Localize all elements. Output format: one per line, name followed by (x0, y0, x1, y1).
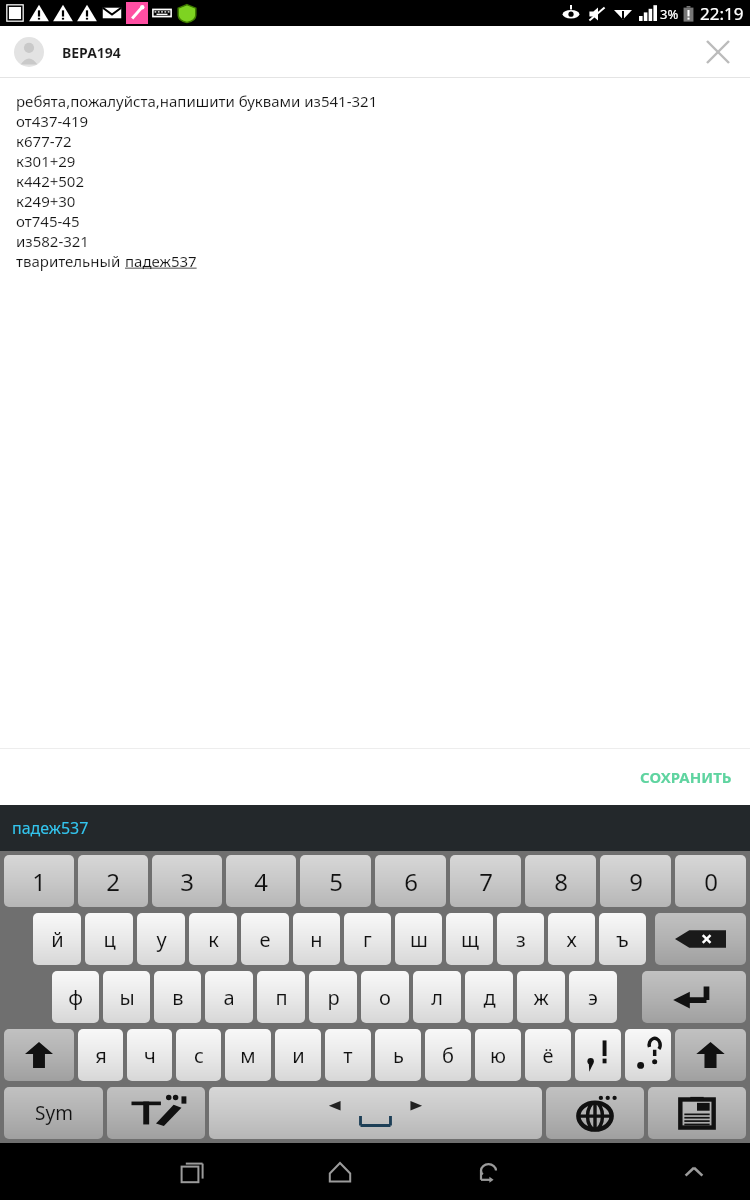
button[interactable]: Backspace (655, 913, 746, 965)
button[interactable]: у (137, 913, 185, 965)
button[interactable]: 7 (450, 855, 521, 907)
staticText: 1 (32, 865, 46, 898)
button[interactable]: Shift (4, 1029, 74, 1081)
staticText: г (363, 926, 372, 953)
staticText: 6 (404, 865, 418, 898)
button[interactable]: й (33, 913, 81, 965)
button[interactable]: 4 (226, 855, 296, 907)
staticText: ч (144, 1042, 156, 1069)
staticText: м (240, 1042, 256, 1069)
staticText: к249+30 (16, 191, 76, 211)
button[interactable]: 2 (78, 855, 148, 907)
button[interactable]: Space (209, 1087, 542, 1139)
button[interactable]: Shift (675, 1029, 746, 1081)
staticText: Sym (35, 1100, 73, 1126)
staticText: к (208, 926, 219, 953)
button[interactable]: ц (85, 913, 133, 965)
staticText: 8 (554, 865, 568, 898)
button[interactable]: Handwriting (107, 1087, 205, 1139)
staticText: тварительный (16, 251, 125, 271)
staticText: от437-419 (16, 111, 89, 131)
button[interactable]: СОХРАНИТЬ (630, 757, 742, 797)
button[interactable]: к (189, 913, 237, 965)
button[interactable]: Clipboard (648, 1087, 746, 1139)
staticText: р (327, 984, 340, 1011)
staticText: ребята,пожалуйста,напишити буквами из541… (16, 91, 378, 111)
staticText: 3 (180, 865, 194, 898)
staticText: н (310, 926, 323, 953)
staticText: я (95, 1042, 107, 1069)
button[interactable]: г (344, 913, 391, 965)
button[interactable]: и (275, 1029, 321, 1081)
button[interactable]: 0 (675, 855, 746, 907)
button[interactable]: ь (375, 1029, 421, 1081)
button[interactable]: н (293, 913, 340, 965)
staticText: 4 (254, 865, 268, 898)
button[interactable]: с (176, 1029, 221, 1081)
staticText: от745-45 (16, 211, 80, 231)
staticText: л (431, 984, 443, 1011)
button[interactable]: т (325, 1029, 371, 1081)
staticText: е (259, 926, 271, 953)
staticText: б (442, 1042, 454, 1069)
staticText: падеж537 (12, 817, 89, 839)
button[interactable]: 8 (525, 855, 596, 907)
staticText: ц (103, 926, 116, 953)
button[interactable]: б (425, 1029, 471, 1081)
staticText: ы (119, 984, 135, 1011)
button[interactable]: Back (458, 1143, 516, 1200)
button[interactable]: ф (52, 971, 99, 1023)
button[interactable]: ш (395, 913, 442, 965)
button[interactable]: 6 (375, 855, 446, 907)
button[interactable]: ч (127, 1029, 172, 1081)
staticText: д (483, 984, 496, 1011)
button[interactable]: Home (311, 1143, 369, 1200)
button[interactable]: ъ (599, 913, 646, 965)
button[interactable]: 5 (300, 855, 371, 907)
button[interactable]: х (548, 913, 595, 965)
button[interactable]: е (241, 913, 289, 965)
staticText: к442+502 (16, 171, 85, 191)
button[interactable]: з (497, 913, 544, 965)
button[interactable]: 9 (600, 855, 671, 907)
staticText: ё (542, 1042, 554, 1069)
button[interactable]: Enter (642, 971, 746, 1023)
staticText: ж (533, 984, 549, 1011)
button[interactable]: 3 (152, 855, 222, 907)
button[interactable]: ы (103, 971, 150, 1023)
staticText: 3% (660, 5, 679, 23)
staticText: ь (393, 1042, 404, 1069)
button[interactable]: я (78, 1029, 123, 1081)
button[interactable]: а (205, 971, 253, 1023)
button[interactable]: падеж537 (125, 251, 197, 271)
button[interactable]: п (257, 971, 305, 1023)
staticText: СОХРАНИТЬ (640, 767, 732, 787)
button[interactable]: в (154, 971, 201, 1023)
button[interactable]: о (361, 971, 409, 1023)
button[interactable]: Expand (665, 1143, 723, 1200)
staticText: у (156, 926, 167, 953)
button[interactable]: 1 (4, 855, 74, 907)
button[interactable]: м (225, 1029, 271, 1081)
button[interactable]: Language (546, 1087, 644, 1139)
button[interactable]: э (569, 971, 617, 1023)
button[interactable]: ё (525, 1029, 571, 1081)
button[interactable]: ю (475, 1029, 521, 1081)
button[interactable]: Period (625, 1029, 671, 1081)
button[interactable]: падеж537 (0, 809, 101, 847)
staticText: 9 (629, 865, 643, 898)
staticText: т (343, 1042, 353, 1069)
staticText: а (223, 984, 235, 1011)
staticText: и (292, 1042, 305, 1069)
button[interactable]: Recent apps (164, 1143, 222, 1200)
button[interactable]: Sym (4, 1087, 103, 1139)
staticText: щ (461, 926, 479, 953)
button[interactable]: Comma (575, 1029, 621, 1081)
staticText: в (172, 984, 184, 1011)
button[interactable]: Close (696, 30, 740, 74)
button[interactable]: ж (517, 971, 565, 1023)
button[interactable]: р (309, 971, 357, 1023)
button[interactable]: д (465, 971, 513, 1023)
button[interactable]: щ (446, 913, 493, 965)
button[interactable]: л (413, 971, 461, 1023)
